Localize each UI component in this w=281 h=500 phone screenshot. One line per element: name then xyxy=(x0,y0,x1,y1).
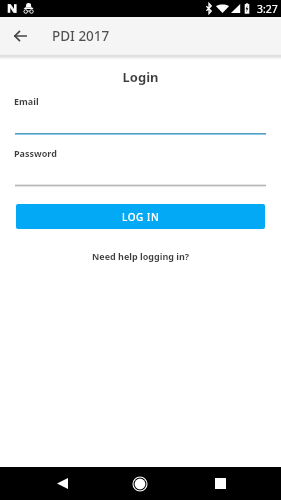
button[interactable]: Recent apps xyxy=(198,467,242,500)
staticText: PDI 2017 xyxy=(52,27,110,45)
button[interactable]: Back xyxy=(0,17,41,53)
staticText: Login xyxy=(0,68,281,86)
button[interactable]: Home xyxy=(118,467,162,500)
staticText: LOG IN xyxy=(122,210,160,224)
staticText: 3:27 xyxy=(257,2,278,16)
button[interactable]: LOG IN xyxy=(16,204,265,229)
button[interactable]: Need help logging in? xyxy=(86,250,196,262)
staticText: Email xyxy=(14,95,39,107)
button[interactable]: Back xyxy=(40,467,84,500)
staticText: Password xyxy=(14,147,57,159)
